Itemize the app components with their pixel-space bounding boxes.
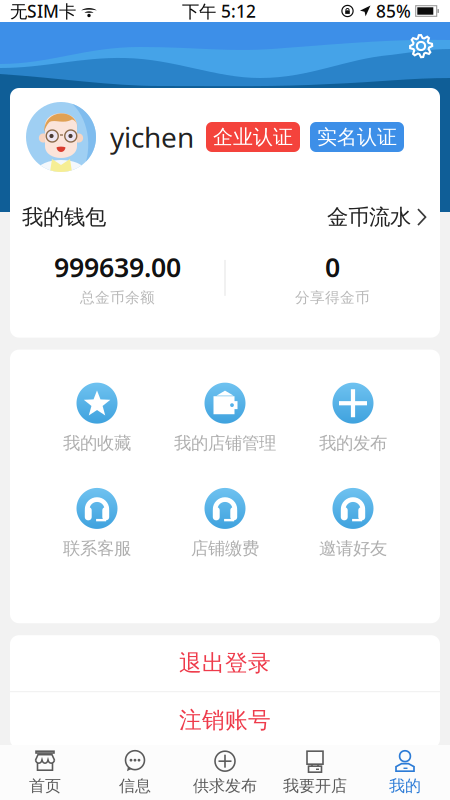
button[interactable]: 我的发布	[289, 383, 417, 454]
staticText: 我的收藏	[63, 433, 131, 454]
staticText: 分享得金币	[295, 289, 370, 307]
button[interactable]: 信息	[90, 746, 180, 798]
staticText: 金币流水	[327, 204, 411, 230]
staticText: 无SIM卡	[10, 0, 76, 22]
staticText: 供求发布	[193, 776, 257, 796]
staticText: 下午 5:12	[182, 0, 256, 22]
button[interactable]: 邀请好友	[289, 488, 417, 559]
button[interactable]: 实名认证	[310, 122, 404, 152]
staticText: 店铺缴费	[191, 538, 259, 559]
staticText: 首页	[29, 776, 61, 796]
staticText: 退出登录	[179, 649, 271, 677]
staticText: 我的钱包	[22, 204, 106, 230]
button[interactable]: 我的钱包	[10, 172, 440, 230]
staticText: 85%	[376, 0, 411, 22]
button[interactable]: 首页	[0, 746, 90, 798]
button[interactable]: 供求发布	[180, 746, 270, 798]
staticText: 999639.00	[54, 249, 181, 285]
staticText: 我的	[389, 776, 421, 796]
staticText: 总金币余额	[80, 289, 155, 307]
staticText: 联系客服	[63, 538, 131, 559]
button[interactable]: 店铺缴费	[161, 488, 289, 559]
staticText: 0	[325, 249, 340, 285]
staticText: 邀请好友	[319, 538, 387, 559]
staticText: 注销账号	[179, 706, 271, 734]
staticText: 我的店铺管理	[174, 433, 276, 454]
button[interactable]: 退出登录	[10, 635, 440, 691]
button[interactable]: 我的店铺管理	[161, 383, 289, 454]
button[interactable]: 我的收藏	[33, 383, 161, 454]
button[interactable]: 我的	[360, 746, 450, 798]
staticText: 我要开店	[283, 776, 347, 796]
button[interactable]: Settings	[400, 25, 442, 67]
staticText: 我的发布	[319, 433, 387, 454]
staticText: 实名认证	[317, 125, 397, 149]
button[interactable]: 企业认证	[206, 122, 300, 152]
staticText: 企业认证	[213, 125, 293, 149]
staticText: 信息	[119, 776, 151, 796]
button[interactable]: 我要开店	[270, 746, 360, 798]
staticText: yichen	[110, 118, 194, 156]
button[interactable]: 注销账号	[10, 692, 440, 748]
button[interactable]: 联系客服	[33, 488, 161, 559]
